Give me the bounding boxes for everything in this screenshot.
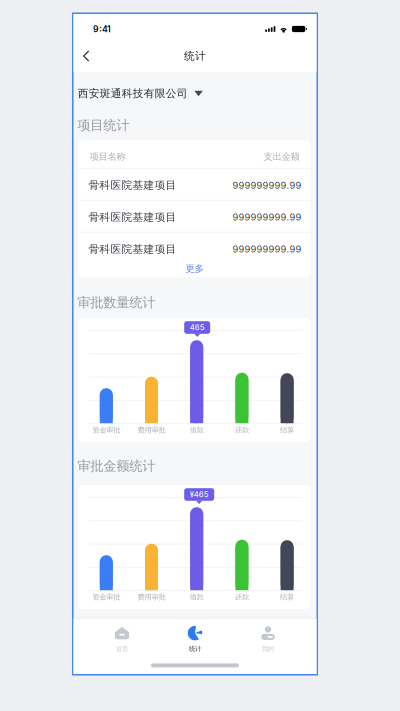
staticText: 费用审批 <box>137 425 165 435</box>
staticText: 项目统计 <box>77 117 129 134</box>
staticText: 骨科医院基建项目 <box>88 210 176 224</box>
staticText: 骨科医院基建项目 <box>88 242 176 256</box>
staticText: 我的 <box>262 645 274 653</box>
button[interactable]: 我的 <box>231 623 304 655</box>
button[interactable]: Back <box>73 44 104 68</box>
staticText: 借款 <box>190 592 204 602</box>
staticText: 费用审批 <box>137 592 165 602</box>
button[interactable]: 西安斑通科技有限公司 <box>73 82 316 104</box>
staticText: 999999999.99 <box>232 212 301 223</box>
staticText: 还款 <box>235 592 249 602</box>
staticText: 还款 <box>235 425 249 435</box>
staticText: 统计 <box>189 645 201 653</box>
staticText: 统计 <box>184 49 206 63</box>
staticText: 资金审批 <box>92 425 120 435</box>
staticText: 465 <box>190 323 205 332</box>
staticText: 结算 <box>280 425 294 435</box>
staticText: 9:41 <box>93 24 111 34</box>
staticText: 审批数量统计 <box>77 294 155 311</box>
staticText: 999999999.99 <box>232 180 301 191</box>
staticText: 更多 <box>185 263 203 274</box>
staticText: 支出金额 <box>263 151 299 163</box>
button[interactable]: 统计 <box>158 623 231 655</box>
staticText: 结算 <box>280 592 294 602</box>
staticText: 项目名称 <box>89 151 125 163</box>
staticText: 首页 <box>116 645 128 653</box>
staticText: 借款 <box>190 425 204 435</box>
staticText: 西安斑通科技有限公司 <box>78 87 188 100</box>
staticText: 骨科医院基建项目 <box>88 179 176 192</box>
staticText: 资金审批 <box>92 592 120 602</box>
button[interactable]: 更多 <box>78 264 311 280</box>
button[interactable]: 首页 <box>85 623 158 655</box>
staticText: ¥465 <box>190 490 209 499</box>
staticText: 审批金额统计 <box>77 458 155 474</box>
staticText: 999999999.99 <box>232 243 301 255</box>
